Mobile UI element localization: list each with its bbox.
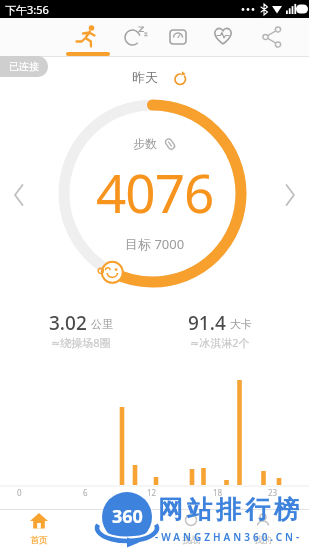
staticText: 23 bbox=[268, 487, 278, 497]
button[interactable] bbox=[116, 19, 152, 55]
staticText: 91.4 bbox=[188, 310, 226, 332]
button[interactable] bbox=[281, 182, 299, 208]
staticText: ≈冰淇淋2个 bbox=[190, 335, 250, 350]
button[interactable] bbox=[10, 182, 28, 208]
button[interactable] bbox=[160, 19, 196, 55]
staticText: 挑战 bbox=[182, 534, 200, 545]
button[interactable]: 我的 bbox=[241, 510, 285, 550]
button[interactable] bbox=[254, 19, 290, 55]
button[interactable] bbox=[205, 19, 241, 55]
staticText: 4076 bbox=[96, 156, 214, 218]
button[interactable] bbox=[70, 19, 106, 55]
staticText: 360 bbox=[112, 504, 143, 525]
staticText: 网站排行榜 bbox=[156, 494, 301, 524]
staticText: ≈绕操场8圈 bbox=[51, 335, 111, 350]
button[interactable]: 首页 bbox=[17, 510, 61, 550]
staticText: 昨天 bbox=[132, 69, 158, 85]
staticText: 下午3:56 bbox=[5, 2, 49, 17]
staticText: 3.02 bbox=[49, 310, 87, 332]
staticText: -WANGZHAN360.CN- bbox=[155, 530, 303, 544]
staticText: 我的 bbox=[254, 534, 272, 545]
staticText: 公里 bbox=[91, 317, 113, 331]
button[interactable] bbox=[172, 70, 188, 86]
staticText: 大卡 bbox=[230, 317, 252, 331]
button[interactable]: 挑战 bbox=[169, 510, 213, 550]
staticText: 首页 bbox=[30, 534, 48, 545]
staticText: 目标 7000 bbox=[125, 235, 185, 253]
staticText: 已连接 bbox=[9, 60, 39, 73]
staticText: 6 bbox=[83, 487, 88, 497]
staticText: 18 bbox=[213, 487, 223, 497]
staticText: 步数 bbox=[133, 136, 157, 151]
staticText: 12 bbox=[147, 487, 157, 497]
staticText: 0 bbox=[17, 487, 22, 497]
